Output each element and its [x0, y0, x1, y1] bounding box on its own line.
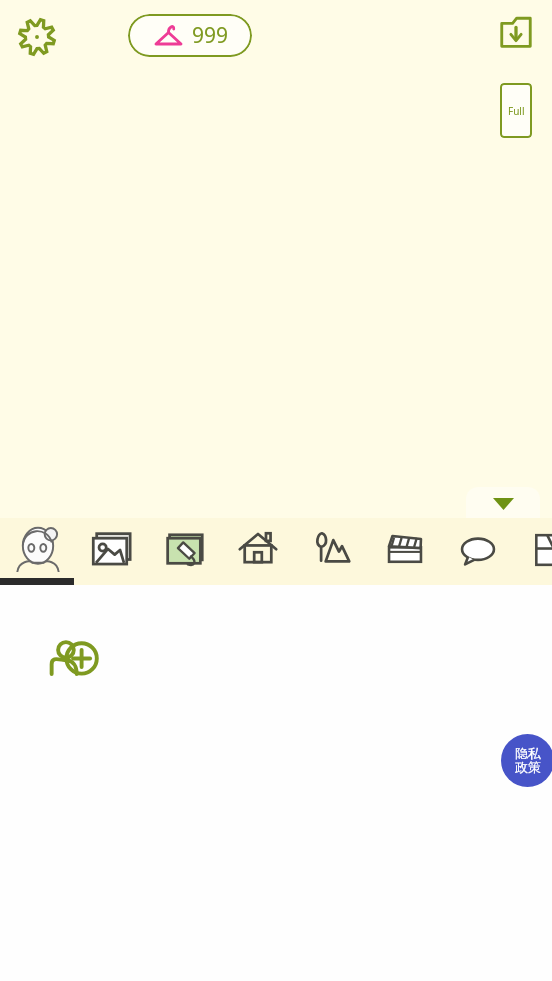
button[interactable]: 999: [128, 14, 252, 57]
button[interactable]: Settings: [13, 13, 61, 61]
button[interactable]: Download: [494, 10, 538, 54]
button[interactable]: Chat: [450, 522, 506, 578]
staticText: Full: [508, 104, 525, 118]
button[interactable]: Profile: [9, 520, 67, 578]
button[interactable]: Add friend: [44, 628, 104, 688]
button[interactable]: Gallery: [82, 522, 138, 578]
button[interactable]: Home: [230, 522, 286, 578]
button[interactable]: Full: [500, 83, 532, 138]
staticText: 隐私 政策: [515, 745, 541, 776]
button[interactable]: Scenery: [303, 522, 359, 578]
button[interactable]: Paint: [156, 522, 212, 578]
button[interactable]: 隐私 政策: [501, 734, 552, 787]
button[interactable]: Notes: [522, 522, 552, 578]
staticText: 999: [192, 21, 229, 50]
button[interactable]: Video: [377, 522, 433, 578]
button[interactable]: Expand categories: [466, 487, 540, 520]
